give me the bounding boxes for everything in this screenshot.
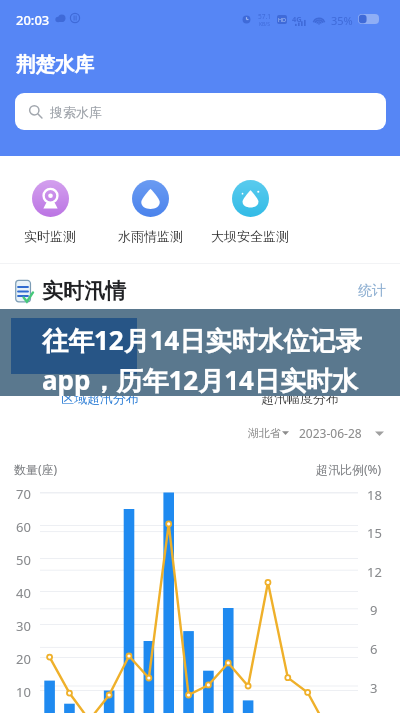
button[interactable]: 大坝安全监测 bbox=[200, 180, 300, 244]
button[interactable]: 水雨情监测 bbox=[100, 180, 200, 244]
button[interactable]: 区域超汛分布 bbox=[0, 390, 200, 406]
staticText: 湖北省 bbox=[248, 426, 281, 440]
staticText: 水雨情监测 bbox=[118, 228, 183, 244]
staticText: 20:03 bbox=[16, 11, 50, 29]
button[interactable]: 统计 bbox=[358, 282, 386, 300]
staticText: 18 bbox=[367, 486, 382, 504]
staticText: 超汛比例(%) bbox=[316, 461, 382, 477]
staticText: 往年12月14日实时水位记录app，历年12月14日实时水位记录 bbox=[42, 322, 372, 398]
staticText: 35% bbox=[331, 13, 353, 28]
staticText: 15 bbox=[367, 524, 382, 542]
staticText: 70 bbox=[16, 485, 31, 503]
staticText: 10 bbox=[16, 683, 31, 701]
staticText: 荆楚水库 bbox=[16, 52, 94, 77]
staticText: 实时汛情 bbox=[42, 278, 126, 304]
staticText: 57.1 bbox=[258, 12, 271, 21]
staticText: 搜索水库 bbox=[50, 104, 102, 120]
staticText: 60 bbox=[16, 518, 31, 536]
staticText: 4G bbox=[292, 14, 302, 24]
staticText: 6 bbox=[370, 640, 378, 658]
staticText: 30 bbox=[16, 617, 31, 635]
staticText: KB/S bbox=[259, 21, 270, 28]
button[interactable]: 湖北省 bbox=[248, 426, 289, 440]
staticText: 12 bbox=[367, 563, 382, 581]
staticText: 50 bbox=[16, 551, 31, 569]
staticText: 大坝安全监测 bbox=[211, 228, 289, 244]
staticText: 3 bbox=[370, 679, 378, 697]
staticText: 数量(座) bbox=[14, 461, 58, 477]
staticText: 20 bbox=[16, 650, 31, 668]
button[interactable]: 超汛幅度分布 bbox=[200, 390, 400, 406]
staticText: 统计 bbox=[358, 282, 386, 300]
staticText: 40 bbox=[16, 584, 31, 602]
staticText: 2023-06-28 bbox=[299, 425, 362, 441]
staticText: HD bbox=[278, 16, 287, 23]
button[interactable]: 搜索水库 bbox=[15, 93, 386, 130]
staticText: 9 bbox=[370, 601, 378, 619]
staticText: 超汛幅度分布 bbox=[261, 390, 339, 406]
staticText: 区域超汛分布 bbox=[61, 390, 139, 406]
button[interactable]: 实时监测 bbox=[0, 180, 100, 244]
staticText: 实时监测 bbox=[24, 228, 76, 244]
